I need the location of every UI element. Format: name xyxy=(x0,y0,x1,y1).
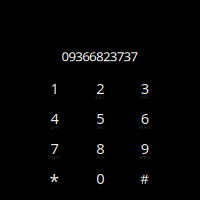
button[interactable]: 6 xyxy=(123,103,167,134)
staticText: 2 xyxy=(96,79,104,98)
button[interactable]: 8 xyxy=(78,133,122,164)
staticText: 7 xyxy=(50,139,58,158)
staticText: 0 xyxy=(96,168,104,188)
staticText: ABC xyxy=(95,94,105,100)
staticText: 4 xyxy=(50,109,58,128)
staticText: GHI xyxy=(50,124,58,130)
button[interactable]: 5 xyxy=(78,103,122,134)
button[interactable]: Star xyxy=(32,163,76,194)
button[interactable]: 2 xyxy=(78,73,122,104)
button[interactable]: 0 xyxy=(78,163,122,194)
staticText: TUV xyxy=(96,154,104,160)
staticText: 8 xyxy=(96,139,104,158)
staticText: 09366823737 xyxy=(61,47,138,65)
staticText: 3 xyxy=(141,79,149,98)
staticText: WXYZ xyxy=(139,154,150,160)
button[interactable]: 3 xyxy=(123,73,167,104)
staticText: + xyxy=(99,184,101,189)
staticText: 1 xyxy=(50,79,58,98)
staticText: DEF xyxy=(141,94,149,100)
staticText: MNO xyxy=(139,124,150,130)
staticText: 9 xyxy=(141,139,149,158)
staticText: 6 xyxy=(141,109,149,128)
staticText: * xyxy=(49,170,59,193)
staticText: # xyxy=(140,170,149,187)
button[interactable]: 4 xyxy=(32,103,76,134)
button[interactable]: 1 xyxy=(32,73,76,104)
button[interactable]: Pound xyxy=(123,163,167,194)
staticText: 5 xyxy=(96,109,104,128)
button[interactable]: 7 xyxy=(32,133,76,164)
button[interactable]: 9 xyxy=(123,133,167,164)
staticText: PQRS xyxy=(49,154,60,160)
staticText: JKL xyxy=(97,124,103,130)
